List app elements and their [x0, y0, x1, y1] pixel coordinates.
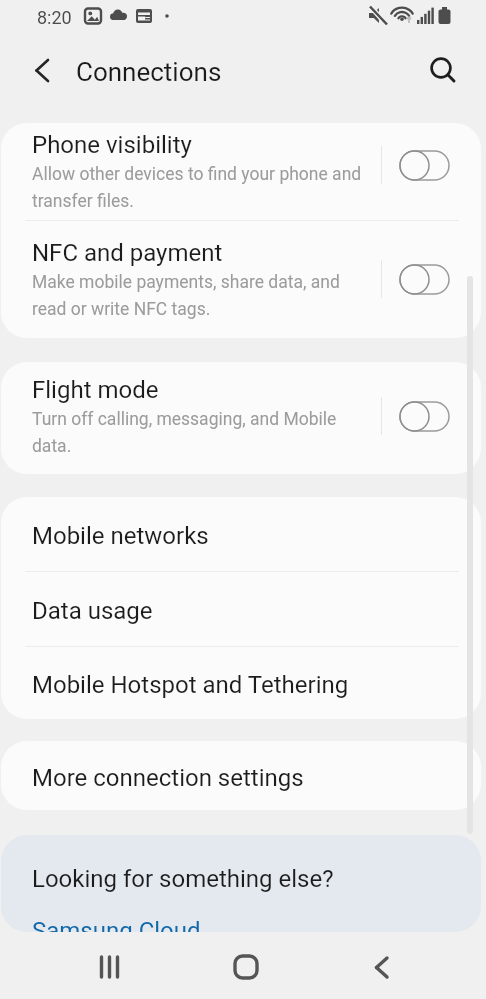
button[interactable]: Toggle: [399, 150, 450, 181]
button[interactable]: Mobile networks: [1, 497, 481, 571]
staticText: Mobile Hotspot and Tethering: [32, 671, 349, 699]
button[interactable]: Toggle: [399, 264, 450, 295]
staticText: Make mobile payments, share data, and re…: [32, 272, 367, 319]
button[interactable]: Flight mode: [1, 362, 481, 474]
button[interactable]: Back: [348, 941, 416, 999]
staticText: Connections: [76, 57, 222, 87]
button[interactable]: More connection settings: [1, 741, 481, 810]
staticText: Data usage: [32, 597, 153, 625]
button[interactable]: Data usage: [1, 572, 481, 646]
staticText: Looking for something else?: [32, 865, 334, 893]
staticText: Allow other devices to find your phone a…: [32, 164, 367, 211]
staticText: Flight mode: [32, 376, 159, 404]
button[interactable]: Phone visibility: [1, 123, 481, 220]
button[interactable]: Home: [212, 941, 280, 999]
button[interactable]: Search: [423, 50, 459, 86]
button[interactable]: NFC and payment: [1, 221, 481, 338]
staticText: NFC and payment: [32, 239, 223, 267]
button[interactable]: Toggle: [399, 401, 450, 432]
button[interactable]: Mobile Hotspot and Tethering: [1, 647, 481, 719]
staticText: Mobile networks: [32, 522, 209, 550]
button[interactable]: Recent apps: [76, 941, 144, 999]
staticText: 8:20: [37, 7, 72, 28]
staticText: Samsung Cloud: [32, 917, 201, 932]
staticText: Turn off calling, messaging, and Mobile …: [32, 409, 367, 456]
staticText: More connection settings: [32, 764, 304, 792]
staticText: Phone visibility: [32, 131, 192, 159]
button[interactable]: Back: [24, 54, 60, 90]
